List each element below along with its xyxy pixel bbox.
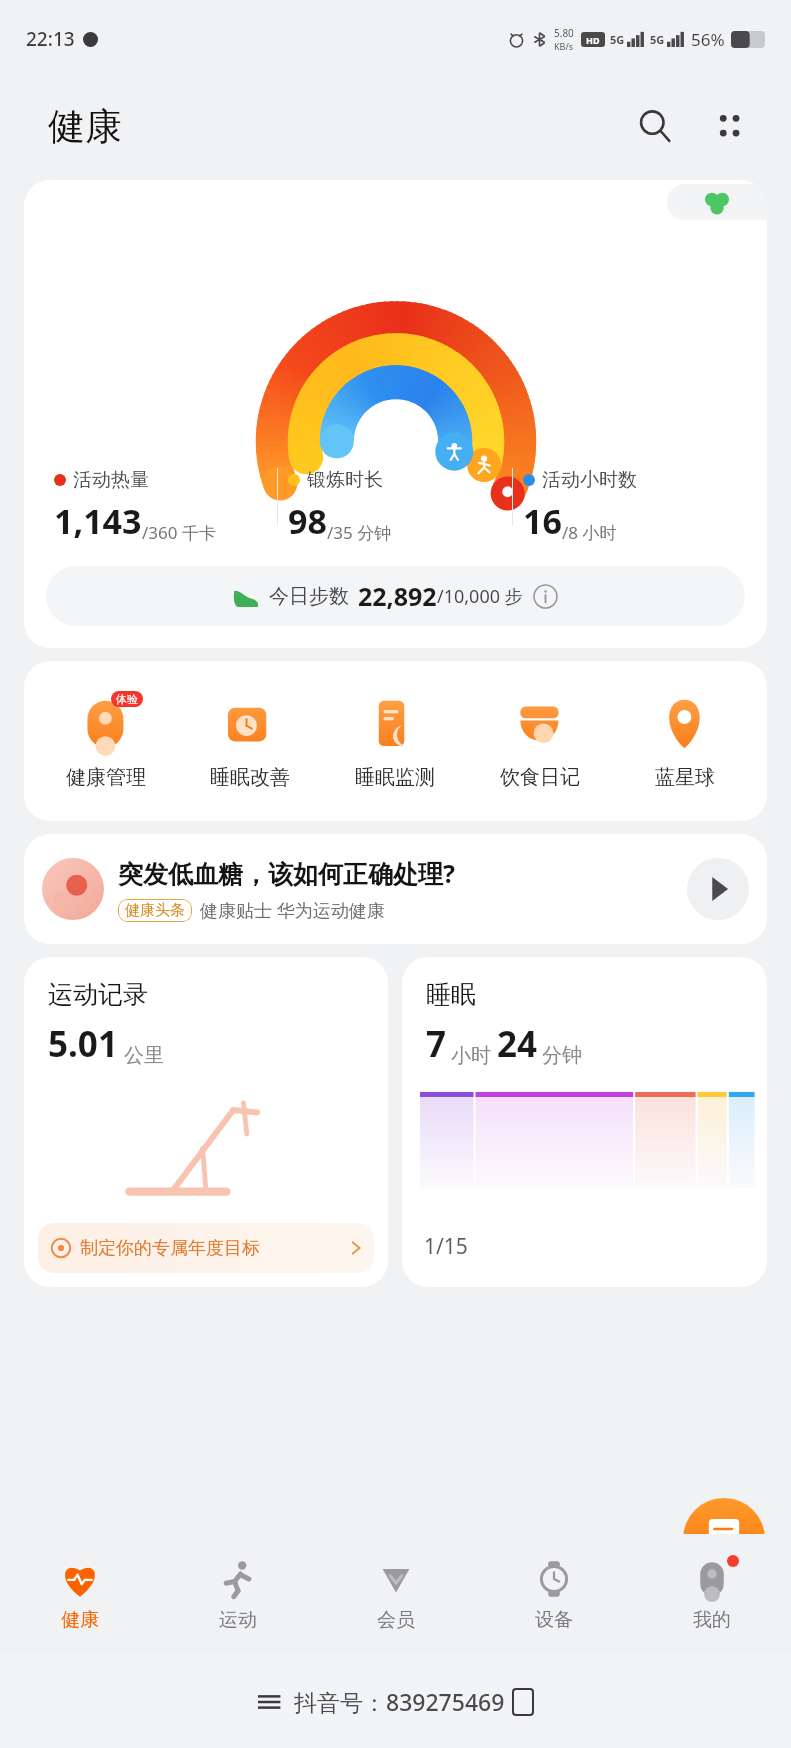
staticText: 5G — [610, 32, 625, 47]
staticText: 公里 — [124, 1043, 164, 1068]
staticText: /8 小时 — [562, 521, 617, 544]
staticText: 抖音号：839275469 — [294, 1686, 505, 1717]
staticText: 1,143 — [54, 498, 142, 544]
staticText: 活动小时数 — [542, 468, 637, 492]
staticText: 1/15 — [424, 1232, 468, 1261]
staticText: KB/s — [554, 40, 574, 52]
staticText: 健康 — [61, 1608, 99, 1632]
staticText: 蓝星球 — [655, 765, 715, 790]
staticText: 运动 — [219, 1608, 257, 1632]
button[interactable]: 制定你的专属年度目标 — [38, 1223, 374, 1273]
staticText: 健康贴士 华为运动健康 — [200, 898, 385, 923]
button[interactable]: 活动热量 — [24, 180, 767, 648]
staticText: 98 — [288, 498, 327, 544]
button[interactable]: 突发低血糖，该如何正确处理? — [42, 834, 749, 944]
staticText: 设备 — [535, 1608, 573, 1632]
button[interactable]: 健康 — [0, 1534, 159, 1654]
staticText: 制定你的专属年度目标 — [80, 1237, 260, 1260]
staticText: 健康头条 — [125, 901, 185, 920]
button[interactable]: 睡眠改善 — [178, 693, 322, 790]
staticText: 小时 — [451, 1043, 491, 1068]
button[interactable]: 我的 — [633, 1534, 791, 1654]
staticText: 饮食日记 — [500, 765, 580, 790]
staticText: HD — [586, 34, 600, 46]
button[interactable]: 运动 — [159, 1534, 317, 1654]
staticText: 22,892 — [358, 579, 437, 613]
staticText: 活动热量 — [73, 468, 149, 492]
staticText: /35 分钟 — [327, 521, 392, 544]
staticText: 锻炼时长 — [307, 468, 383, 492]
button[interactable]: 睡眠 — [402, 957, 767, 1287]
staticText: 16 — [523, 498, 562, 544]
button[interactable]: Search — [627, 98, 683, 154]
button[interactable]: 设备 — [475, 1534, 633, 1654]
staticText: 22:13 — [26, 26, 75, 52]
button[interactable]: 运动记录 — [24, 957, 388, 1287]
staticText: 健康 — [48, 103, 122, 150]
staticText: 24 — [497, 1020, 538, 1068]
staticText: 56% — [691, 28, 725, 51]
staticText: 我的 — [693, 1608, 731, 1632]
staticText: 睡眠 — [426, 979, 476, 1010]
staticText: 体验 — [116, 692, 138, 706]
staticText: 5.01 — [48, 1020, 118, 1068]
button[interactable]: More options — [701, 98, 757, 154]
staticText: 今日步数 — [269, 584, 349, 609]
staticText: /10,000 步 — [437, 584, 523, 609]
button[interactable]: 今日步数 — [46, 566, 745, 626]
button[interactable]: 饮食日记 — [467, 693, 612, 790]
button[interactable]: Play — [687, 858, 749, 920]
staticText: 运动记录 — [48, 979, 148, 1010]
button[interactable]: 睡眠监测 — [322, 693, 467, 790]
staticText: 7 — [426, 1020, 447, 1068]
staticText: 5.80 — [554, 26, 574, 40]
staticText: 5G — [650, 32, 665, 47]
staticText: 健康管理 — [66, 765, 146, 790]
staticText: 会员 — [377, 1608, 415, 1632]
button[interactable]: 蓝星球 — [612, 693, 757, 790]
staticText: 突发低血糖，该如何正确处理? — [118, 856, 455, 890]
staticText: 分钟 — [542, 1043, 582, 1068]
button[interactable]: Add record — [683, 1498, 765, 1580]
button[interactable]: 体验 — [34, 693, 178, 790]
staticText: /360 千卡 — [142, 521, 216, 544]
staticText: 睡眠监测 — [355, 765, 435, 790]
button[interactable]: 会员 — [317, 1534, 475, 1654]
staticText: 睡眠改善 — [210, 765, 290, 790]
